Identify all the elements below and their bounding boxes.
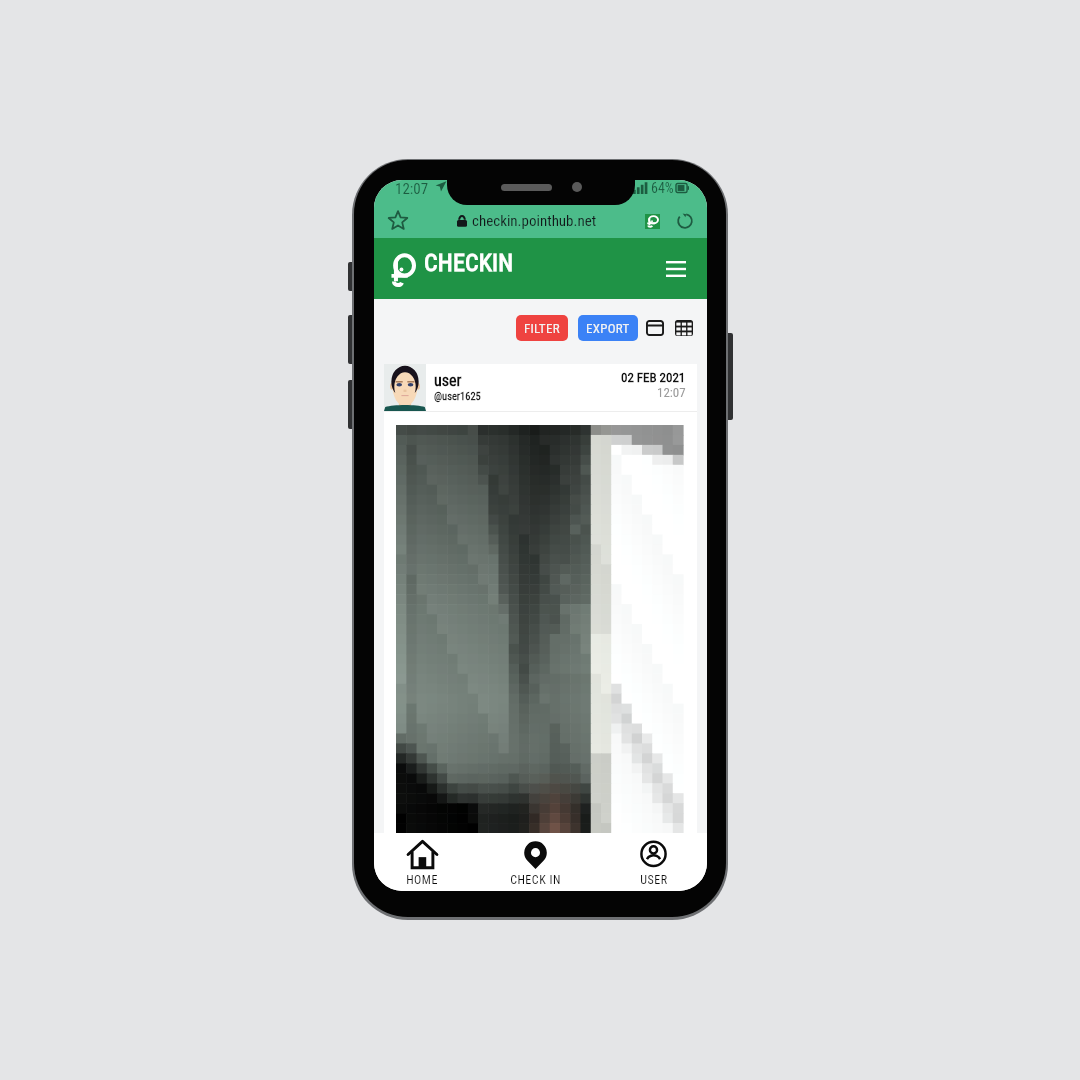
- button[interactable]: Menu: [660, 253, 692, 285]
- staticText: CHECKIN: [424, 249, 514, 277]
- button[interactable]: FILTER: [516, 315, 568, 341]
- button[interactable]: USER: [600, 833, 707, 891]
- staticText: 64%: [651, 180, 674, 194]
- staticText: USER: [640, 873, 668, 887]
- staticText: @user1625: [434, 390, 481, 402]
- staticText: user: [434, 371, 462, 390]
- staticText: 02 FEB 2021: [621, 370, 686, 385]
- button[interactable]: EXPORT: [578, 315, 638, 341]
- staticText: 12:07: [395, 180, 429, 194]
- staticText: checkin.pointhub.net: [472, 212, 597, 230]
- button[interactable]: CHECK IN: [470, 833, 600, 891]
- button[interactable]: HOME: [374, 833, 470, 891]
- staticText: EXPORT: [586, 321, 630, 336]
- staticText: CHECK IN: [510, 873, 561, 887]
- staticText: HOME: [406, 873, 438, 887]
- button[interactable]: Card view: [641, 314, 669, 342]
- staticText: 12:07: [657, 385, 686, 400]
- button[interactable]: user: [384, 364, 697, 833]
- button[interactable]: Bookmark: [386, 209, 410, 233]
- staticText: FILTER: [524, 321, 560, 336]
- button[interactable]: Reload: [674, 210, 696, 232]
- button[interactable]: Table view: [670, 314, 698, 342]
